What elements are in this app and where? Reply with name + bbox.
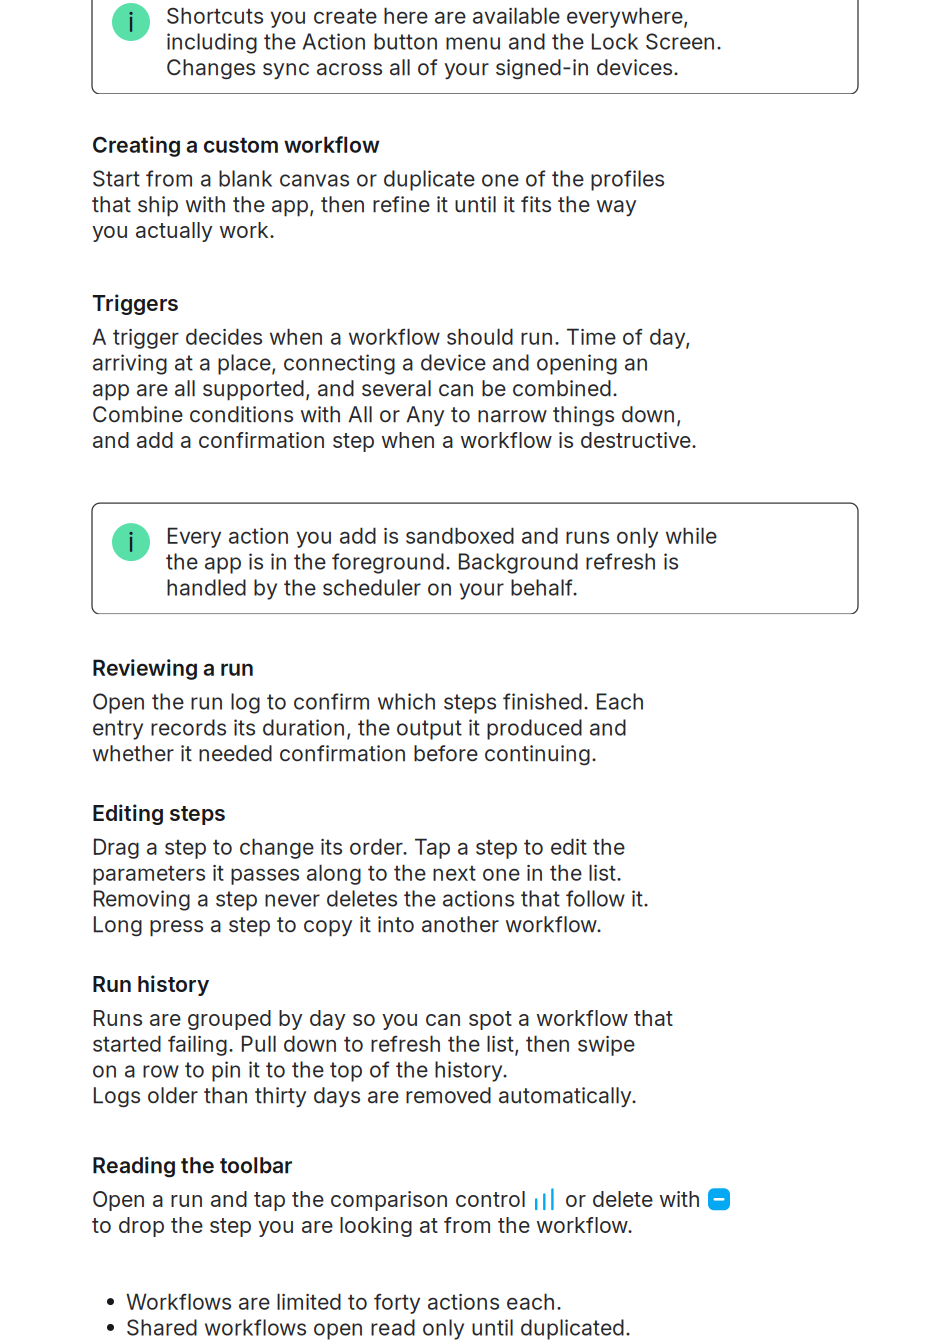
staticText: Every action you add is sandboxed and ru… bbox=[166, 523, 717, 549]
staticText: Logs older than thirty days are removed … bbox=[92, 1083, 637, 1108]
staticText: Changes sync across all of your signed-i… bbox=[166, 55, 679, 80]
staticText: and add a confirmation step when a workf… bbox=[92, 427, 697, 453]
staticText: Open a run and tap the comparison contro… bbox=[92, 1186, 526, 1212]
staticText: Run history bbox=[92, 971, 209, 997]
button[interactable]: Remove step bbox=[708, 1188, 730, 1210]
staticText: to drop the step you are looking at from… bbox=[92, 1212, 633, 1238]
staticText: entry records its duration, the output i… bbox=[92, 715, 627, 740]
staticText: Reviewing a run bbox=[92, 655, 254, 681]
staticText: Runs are grouped by day so you can spot … bbox=[92, 1005, 673, 1031]
staticText: whether it needed confirmation before co… bbox=[92, 740, 597, 766]
staticText: on a row to pin it to the top of the his… bbox=[92, 1057, 508, 1083]
staticText: i bbox=[128, 526, 134, 558]
staticText: Open the run log to confirm which steps … bbox=[92, 689, 645, 715]
staticText: that ship with the app, then refine it u… bbox=[92, 192, 637, 217]
staticText: Removing a step never deletes the action… bbox=[92, 886, 649, 912]
staticText: including the Action button menu and the… bbox=[166, 29, 722, 55]
staticText: app are all supported, and several can b… bbox=[92, 376, 618, 401]
staticText: or delete with bbox=[565, 1186, 701, 1212]
staticText: you actually work. bbox=[92, 217, 275, 243]
button[interactable]: Compare runs bbox=[535, 1188, 554, 1210]
staticText: arriving at a place, connecting a device… bbox=[92, 350, 649, 376]
staticText: parameters it passes along to the next o… bbox=[92, 860, 622, 886]
staticText: Shortcuts you create here are available … bbox=[166, 3, 689, 29]
staticText: Drag a step to change its order. Tap a s… bbox=[92, 834, 625, 860]
staticText: Combine conditions with All or Any to na… bbox=[92, 401, 682, 427]
staticText: Creating a custom workflow bbox=[92, 132, 380, 158]
staticText: Shared workflows open read only until du… bbox=[126, 1315, 631, 1341]
staticText: started failing. Pull down to refresh th… bbox=[92, 1031, 635, 1057]
staticText: Long press a step to copy it into anothe… bbox=[92, 912, 602, 937]
staticText: handled by the scheduler on your behalf. bbox=[166, 575, 578, 600]
staticText: Workflows are limited to forty actions e… bbox=[126, 1289, 562, 1315]
staticText: Editing steps bbox=[92, 800, 226, 826]
staticText: Triggers bbox=[92, 290, 179, 316]
staticText: A trigger decides when a workflow should… bbox=[92, 324, 691, 350]
staticText: i bbox=[128, 6, 134, 38]
staticText: Reading the toolbar bbox=[92, 1152, 292, 1178]
staticText: the app is in the foreground. Background… bbox=[166, 549, 679, 575]
staticText: Start from a blank canvas or duplicate o… bbox=[92, 166, 665, 192]
